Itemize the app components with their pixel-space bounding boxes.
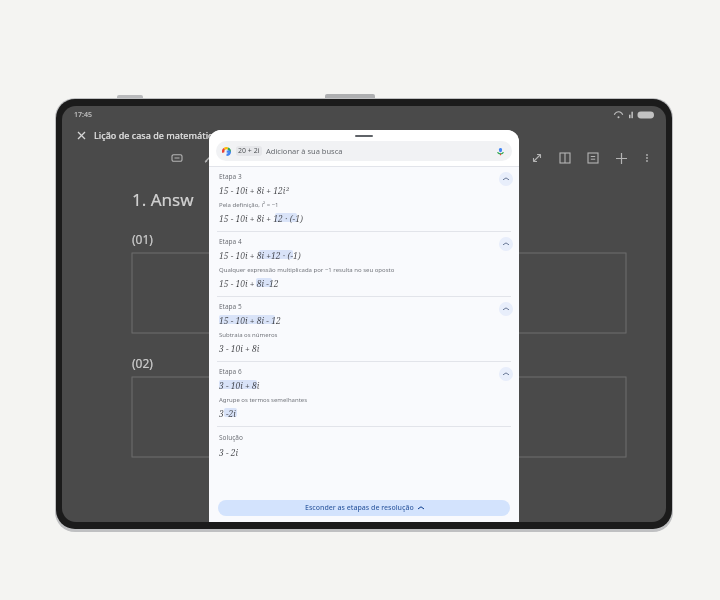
staticText: Adicionar à sua busca (266, 146, 343, 156)
staticText: (02) (132, 355, 153, 371)
button[interactable]: Expandir (530, 151, 544, 165)
staticText: Etapa 5 (219, 302, 242, 311)
staticText: 3 − 2i (219, 447, 239, 459)
staticText: 17:45 (74, 110, 92, 120)
staticText: Subtraia os números (219, 331, 278, 339)
button[interactable]: Pesquisa por voz (495, 146, 506, 157)
button[interactable]: Fechar (74, 128, 88, 142)
staticText: 15 − 10i + 8i + 12 · (−1) (219, 213, 303, 225)
staticText: 15 − 10i + 8i −12 (219, 278, 279, 290)
button[interactable]: Caneta (202, 151, 216, 165)
staticText: Esconder as etapas de resolução (305, 503, 414, 513)
staticText: Agrupe os termos semelhantes (219, 396, 308, 404)
button[interactable]: Adicionar (614, 151, 628, 165)
button[interactable]: Mais opções (640, 151, 654, 165)
staticText: 3 − 10i + 8i (219, 343, 260, 355)
staticText: Etapa 6 (219, 367, 242, 376)
button[interactable]: Esconder as etapas de resolução (218, 500, 510, 516)
staticText: 20 + 2i (238, 146, 260, 156)
button[interactable]: Recolher Etapa 3 (499, 172, 513, 186)
button[interactable]: Histórico (170, 151, 184, 165)
button[interactable]: Notas (586, 151, 600, 165)
staticText: Solução (219, 433, 243, 442)
button[interactable]: Recolher Etapa 5 (499, 302, 513, 316)
staticText: Lição de casa de matemática (94, 129, 218, 141)
staticText: Etapa 4 (219, 237, 242, 246)
staticText: Qualquer expressão multiplicada por −1 r… (219, 266, 395, 274)
button[interactable]: 20 + 2i (216, 141, 512, 161)
staticText: 15 − 10i + 8i + 12i² (219, 185, 289, 197)
staticText: Etapa 3 (219, 172, 242, 181)
staticText: (01) (132, 231, 153, 247)
button[interactable]: Recolher Etapa 6 (499, 367, 513, 381)
staticText: 15 − 10i + 8i − 12 (219, 315, 281, 327)
staticText: 3 − 10i + 8i (219, 380, 260, 392)
button[interactable]: Recolher Etapa 4 (499, 237, 513, 251)
staticText: 15 − 10i + 8i +12 · (−1) (219, 250, 301, 262)
button[interactable]: Layout (558, 151, 572, 165)
staticText: 3 −2i (219, 408, 236, 420)
staticText: 1. Answ (132, 188, 194, 211)
staticText: Pela definição, i² = −1 (219, 201, 279, 209)
